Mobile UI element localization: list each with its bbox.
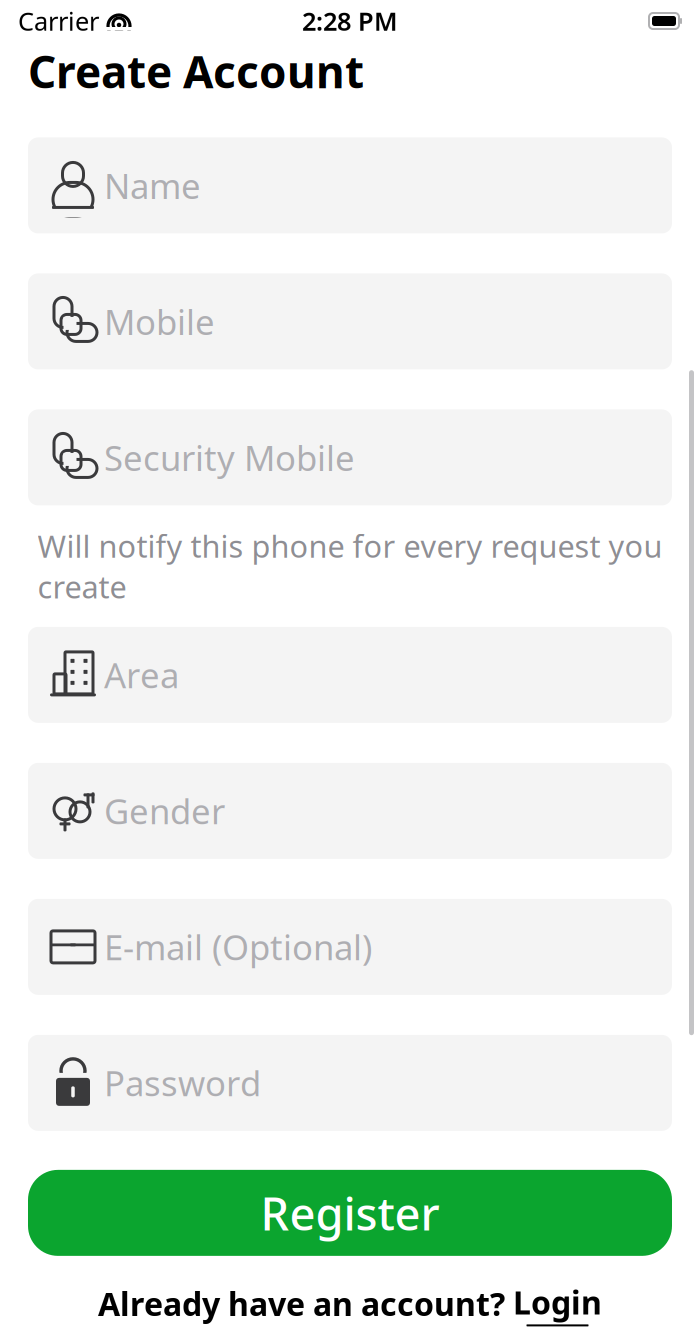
button[interactable]: Area	[28, 627, 672, 723]
button[interactable]: Already have an account?	[98, 1281, 602, 1326]
staticText: E-mail (Optional)	[104, 924, 372, 970]
staticText: Register	[260, 1183, 439, 1243]
staticText: Name	[104, 162, 201, 208]
button[interactable]: Mobile	[28, 273, 672, 369]
button[interactable]: E-mail (Optional)	[28, 899, 672, 995]
button[interactable]: Password	[28, 1035, 672, 1131]
staticText: Login	[513, 1281, 602, 1323]
button[interactable]: Name	[28, 137, 672, 233]
button[interactable]: Register	[28, 1170, 672, 1256]
staticText: Security Mobile	[104, 434, 355, 480]
staticText: Will notify this phone for every request…	[37, 525, 662, 607]
staticText: Create Account	[28, 42, 364, 100]
button[interactable]: Security Mobile	[28, 409, 672, 505]
staticText: Mobile	[104, 298, 215, 344]
staticText: Area	[104, 652, 179, 698]
staticText: Already have an account?	[98, 1282, 505, 1325]
staticText: Gender	[104, 788, 225, 834]
button[interactable]: Gender	[28, 763, 672, 859]
staticText: Password	[104, 1060, 261, 1106]
